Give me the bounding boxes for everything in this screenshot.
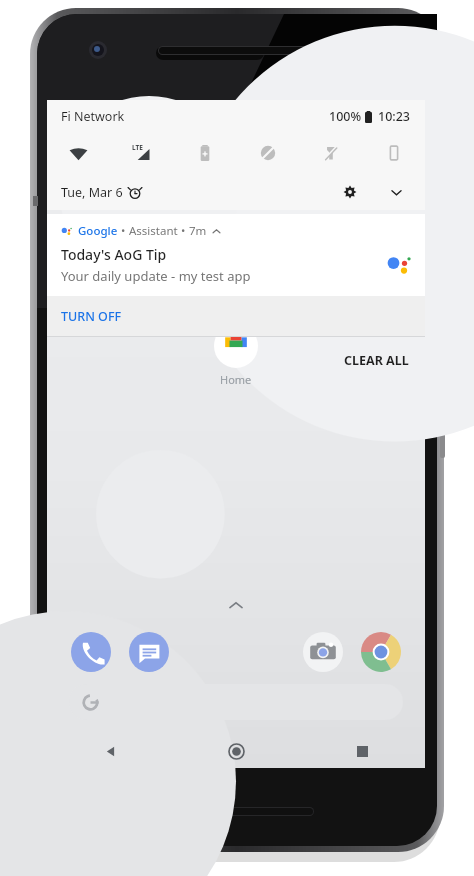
staticText: • <box>178 223 189 239</box>
staticText: Assistant <box>129 223 178 239</box>
staticText: Tue, Mar 6 <box>61 184 123 201</box>
button[interactable]: Battery saver <box>173 132 236 174</box>
staticText: Fi Network <box>61 108 125 125</box>
button[interactable]: Home <box>173 734 299 768</box>
staticText: TURN OFF <box>61 308 122 325</box>
staticText: • <box>118 223 129 239</box>
staticText: Home <box>220 372 252 387</box>
button[interactable]: Expand quick settings <box>381 177 411 207</box>
staticText: LTE <box>132 143 143 152</box>
button[interactable]: Flashlight <box>299 132 362 174</box>
button[interactable]: Settings <box>335 177 365 207</box>
staticText: Google <box>78 223 118 239</box>
button[interactable] <box>359 630 403 674</box>
button[interactable] <box>69 630 113 674</box>
staticText: Your daily update - my test app <box>61 267 251 285</box>
staticText: Today's AoG Tip <box>61 245 167 264</box>
button[interactable]: Wi-Fi <box>47 132 110 174</box>
button[interactable]: Mobile data <box>110 132 173 174</box>
button[interactable]: Recent apps <box>299 734 425 768</box>
staticText: 7m <box>189 223 207 239</box>
staticText: 100% <box>329 108 362 125</box>
button[interactable]: Auto rotate <box>362 132 425 174</box>
staticText: 10:23 <box>378 108 411 125</box>
button[interactable]: Search <box>69 684 403 720</box>
button[interactable]: TURN OFF <box>47 296 136 336</box>
button[interactable] <box>301 630 345 674</box>
button[interactable] <box>127 630 171 674</box>
staticText: CLEAR ALL <box>344 352 409 369</box>
button[interactable]: All apps <box>218 588 254 624</box>
button[interactable]: Do not disturb <box>236 132 299 174</box>
button[interactable]: Home <box>204 322 268 389</box>
button[interactable]: Google <box>47 214 425 336</box>
button[interactable]: Back <box>47 734 173 768</box>
button[interactable]: CLEAR ALL <box>328 337 425 383</box>
